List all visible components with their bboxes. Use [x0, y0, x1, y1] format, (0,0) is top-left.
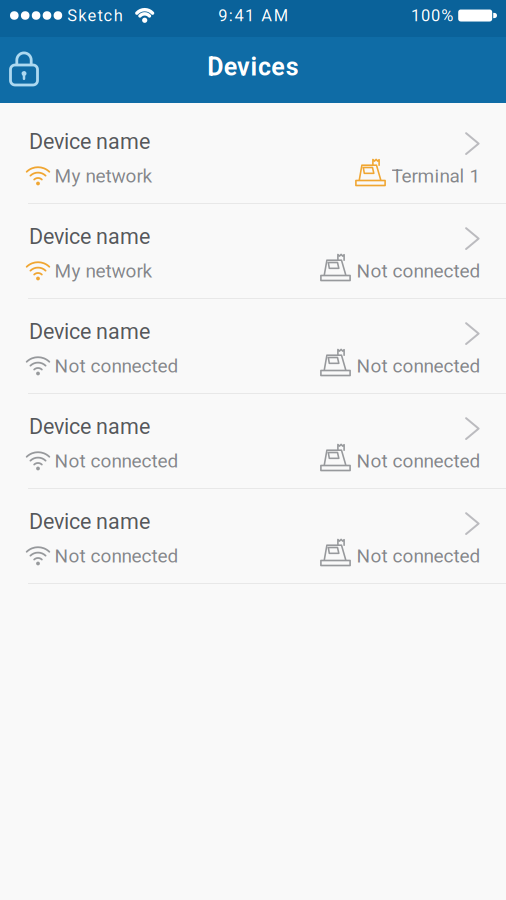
staticText: Terminal 1 [391, 165, 480, 187]
button[interactable]: Unlock [0, 50, 40, 90]
staticText: Not connected [54, 545, 178, 567]
staticText: Device name [29, 319, 150, 344]
staticText: Not connected [54, 355, 178, 377]
button[interactable]: Device name [0, 109, 506, 204]
staticText: 100% [411, 6, 453, 25]
staticText: Device name [29, 509, 150, 534]
staticText: Not connected [54, 450, 178, 472]
staticText: Not connected [356, 545, 480, 567]
button[interactable]: Device name [0, 489, 506, 584]
staticText: Not connected [356, 450, 480, 472]
staticText: 9:41 AM [218, 6, 288, 25]
staticText: My network [54, 260, 152, 282]
button[interactable]: Device name [0, 204, 506, 299]
staticText: Sketch [67, 6, 123, 25]
button[interactable]: Device name [0, 394, 506, 489]
button[interactable]: Device name [0, 299, 506, 394]
staticText: Not connected [356, 260, 480, 282]
staticText: Device name [29, 224, 150, 249]
staticText: Device name [29, 129, 150, 154]
staticText: My network [54, 165, 152, 187]
staticText: Not connected [356, 355, 480, 377]
staticText: Device name [29, 414, 150, 439]
staticText: Devices [207, 52, 299, 82]
